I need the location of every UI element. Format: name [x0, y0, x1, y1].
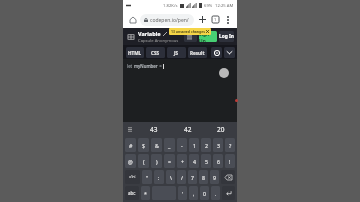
- staticText: ': [182, 190, 184, 197]
- button[interactable]: =: [164, 154, 175, 168]
- staticText: \: [170, 174, 172, 181]
- button[interactable]: ,: [189, 186, 198, 200]
- staticText: (: [143, 158, 145, 165]
- button[interactable]: .: [211, 186, 220, 200]
- staticText: !: [229, 158, 231, 165]
- staticText: 20: [217, 125, 225, 134]
- staticText: 4: [193, 158, 196, 165]
- button[interactable]: 6: [213, 154, 223, 168]
- staticText: Sign Up: [199, 31, 217, 42]
- button[interactable]: +: [177, 154, 187, 168]
- staticText: =: [168, 158, 171, 165]
- button[interactable]: Home: [127, 14, 138, 25]
- button[interactable]: 3: [213, 138, 223, 152]
- button[interactable]: ?: [225, 138, 235, 152]
- button[interactable]: Editor menu: [184, 31, 197, 42]
- button[interactable]: CodePen: [126, 32, 135, 41]
- button[interactable]: let: [123, 59, 237, 122]
- button[interactable]: HTML: [126, 47, 144, 58]
- button[interactable]: 4: [189, 154, 199, 168]
- button[interactable]: More options: [222, 14, 233, 25]
- staticText: -: [181, 142, 183, 149]
- staticText: Capsule Anonymous: [138, 38, 179, 44]
- button[interactable]: codepen.io/pen/: [140, 14, 194, 26]
- staticText: $: [142, 142, 145, 149]
- staticText: 9: [213, 174, 216, 181]
- button[interactable]: &: [151, 138, 162, 152]
- button[interactable]: -: [177, 138, 187, 152]
- button[interactable]: !: [225, 154, 235, 168]
- staticText: +: [181, 158, 184, 165]
- staticText: 5: [205, 158, 208, 165]
- button[interactable]: 20: [204, 122, 237, 136]
- button[interactable]: *: [141, 186, 150, 200]
- staticText: myNumber: [134, 63, 158, 69]
- button[interactable]: Sign Up: [199, 31, 217, 42]
- button[interactable]: New tab: [197, 14, 208, 25]
- button[interactable]: 1: [189, 138, 199, 152]
- button[interactable]: #: [125, 138, 136, 152]
- staticText: @: [128, 158, 133, 165]
- button[interactable]: Letters: [125, 186, 139, 200]
- staticText: 0: [203, 190, 206, 197]
- staticText: Variable: [138, 30, 161, 37]
- button[interactable]: @: [125, 154, 136, 168]
- button[interactable]: 13 unsaved changes: [169, 28, 211, 35]
- staticText: =\<: [129, 174, 136, 180]
- staticText: 43: [150, 125, 158, 134]
- staticText: 7: [191, 174, 194, 181]
- button[interactable]: ): [151, 154, 162, 168]
- button[interactable]: $: [138, 138, 149, 152]
- button[interactable]: Log In: [219, 31, 234, 42]
- staticText: 42: [184, 125, 192, 134]
- staticText: *: [144, 190, 147, 197]
- staticText: ,: [193, 190, 195, 197]
- button[interactable]: ': [178, 186, 187, 200]
- button[interactable]: CSS: [146, 47, 165, 58]
- staticText: 12:25 AM: [215, 3, 234, 9]
- button[interactable]: 42: [171, 122, 204, 136]
- button[interactable]: ": [142, 170, 152, 184]
- staticText: ): [156, 158, 158, 165]
- staticText: 13 unsaved changes: [171, 29, 205, 34]
- staticText: CSS: [151, 50, 160, 56]
- staticText: JS: [174, 50, 179, 56]
- staticText: 3: [217, 142, 220, 149]
- staticText: 2: [205, 142, 208, 149]
- staticText: Log In: [219, 33, 234, 40]
- button[interactable]: Settings: [211, 47, 222, 58]
- button[interactable]: /: [177, 170, 186, 184]
- button[interactable]: (: [138, 154, 149, 168]
- button[interactable]: Tabs: [210, 14, 221, 25]
- button[interactable]: 0: [200, 186, 209, 200]
- button[interactable]: 2: [201, 138, 211, 152]
- button[interactable]: Expand: [224, 47, 235, 58]
- button[interactable]: JS: [167, 47, 186, 58]
- button[interactable]: Keyboard options: [123, 122, 137, 136]
- staticText: abc: [128, 190, 136, 196]
- button[interactable]: \: [166, 170, 175, 184]
- button[interactable]: Result: [188, 47, 207, 58]
- button[interactable]: Symbols: [125, 170, 140, 184]
- staticText: 1: [193, 142, 196, 149]
- button[interactable]: 7: [188, 170, 197, 184]
- button[interactable]: Backspace: [221, 170, 235, 184]
- button[interactable]: :: [154, 170, 164, 184]
- staticText: /: [181, 174, 183, 181]
- staticText: ?: [229, 142, 232, 149]
- staticText: &: [155, 142, 159, 149]
- button[interactable]: _: [164, 138, 175, 152]
- staticText: 8: [202, 174, 205, 181]
- button[interactable]: 43: [137, 122, 171, 136]
- staticText: =: [158, 63, 163, 69]
- button[interactable]: Enter: [222, 186, 235, 200]
- staticText: ": [146, 174, 149, 181]
- button[interactable]: 8: [199, 170, 208, 184]
- staticText: :: [158, 174, 160, 181]
- button[interactable]: 5: [201, 154, 211, 168]
- button[interactable]: 9: [210, 170, 219, 184]
- staticText: .: [215, 190, 217, 197]
- staticText: let: [127, 63, 134, 69]
- staticText: 1: [214, 17, 217, 22]
